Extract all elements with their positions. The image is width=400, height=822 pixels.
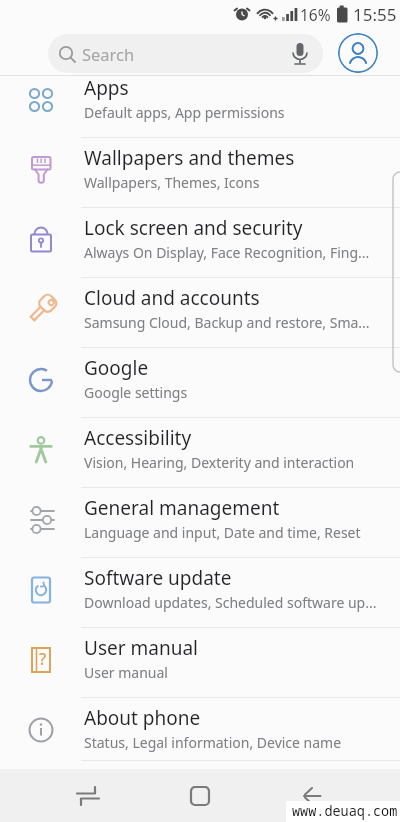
- staticText: www.deuaq.com: [292, 802, 398, 820]
- staticText: Google: [84, 355, 149, 381]
- staticText: Google settings: [84, 383, 188, 402]
- staticText: Samsung Cloud, Backup and restore, Sma..…: [84, 313, 370, 332]
- staticText: Search: [82, 43, 135, 65]
- button[interactable]: Cloud and accounts: [0, 278, 400, 348]
- staticText: Software update: [84, 565, 232, 591]
- button[interactable]: [144, 769, 256, 822]
- staticText: Default apps, App permissions: [84, 103, 285, 122]
- staticText: Accessibility: [84, 425, 192, 451]
- staticText: Lock screen and security: [84, 215, 303, 241]
- staticText: About phone: [84, 705, 201, 731]
- staticText: 16%: [300, 4, 331, 25]
- staticText: Apps: [84, 76, 129, 101]
- button[interactable]: Apps: [0, 76, 400, 138]
- staticText: Always On Display, Face Recognition, Fin…: [84, 243, 370, 262]
- staticText: Wallpapers, Themes, Icons: [84, 173, 260, 192]
- button[interactable]: About phone: [0, 698, 400, 761]
- staticText: ?: [39, 648, 47, 670]
- staticText: Vision, Hearing, Dexterity and interacti…: [84, 453, 355, 472]
- button[interactable]: [256, 769, 368, 822]
- button[interactable]: Lock screen and security: [0, 208, 400, 278]
- staticText: 15:55: [353, 3, 397, 26]
- staticText: General management: [84, 495, 280, 521]
- staticText: Cloud and accounts: [84, 285, 260, 311]
- staticText: User manual: [84, 635, 198, 661]
- button[interactable]: [338, 33, 378, 73]
- staticText: Status, Legal information, Device name: [84, 733, 342, 752]
- staticText: Wallpapers and themes: [84, 145, 295, 171]
- button[interactable]: Search: [48, 34, 323, 73]
- button[interactable]: Accessibility: [0, 418, 400, 488]
- button[interactable]: User manual: [0, 628, 400, 698]
- button[interactable]: Wallpapers and themes: [0, 138, 400, 208]
- staticText: User manual: [84, 663, 168, 682]
- button[interactable]: Google: [0, 348, 400, 418]
- button[interactable]: Software update: [0, 558, 400, 628]
- staticText: Language and input, Date and time, Reset: [84, 523, 361, 542]
- staticText: Download updates, Scheduled software up.…: [84, 593, 377, 612]
- button[interactable]: [32, 769, 144, 822]
- button[interactable]: General management: [0, 488, 400, 558]
